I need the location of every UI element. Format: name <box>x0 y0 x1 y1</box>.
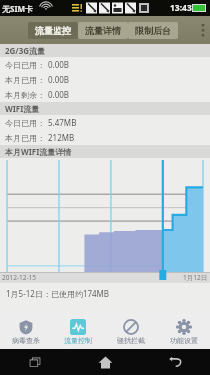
staticText: 功能设置 <box>170 336 198 345</box>
staticText: 流量监控 <box>35 25 71 36</box>
button[interactable]: Recent apps <box>0 349 70 375</box>
button[interactable]: 本月剩余： <box>0 87 210 102</box>
button[interactable]: 今日已用： <box>0 115 210 130</box>
button[interactable]: 流量详情 <box>78 22 128 39</box>
button[interactable]: 病毒查杀 <box>0 315 52 349</box>
staticText: 病毒查杀 <box>12 336 40 345</box>
staticText: 1月5-12日：已使用约174MB <box>6 288 110 299</box>
button[interactable]: 流量控制 <box>52 315 104 349</box>
staticText: 骚扰拦截 <box>117 336 145 345</box>
staticText: 今日已用： <box>5 118 45 128</box>
staticText: 本月已用： <box>5 133 45 143</box>
staticText: 13:43 <box>170 2 192 14</box>
staticText: 无SIM卡 <box>2 3 34 14</box>
staticText: 本月剩余： <box>5 90 45 100</box>
staticText: 本月已用： <box>5 75 45 85</box>
button[interactable]: 骚扰拦截 <box>104 315 157 349</box>
button[interactable]: 本月已用： <box>0 130 210 145</box>
staticText: 0.00B <box>48 59 70 70</box>
button[interactable]: Back <box>140 349 210 375</box>
button[interactable]: 本月已用： <box>0 72 210 87</box>
staticText: 2G/3G流量 <box>5 45 46 56</box>
staticText: 今日已用： <box>5 60 45 70</box>
staticText: 流量控制 <box>64 336 92 345</box>
staticText: 5.47MB <box>48 117 77 128</box>
staticText: 0.00B <box>48 74 70 85</box>
button[interactable]: 功能设置 <box>157 315 210 349</box>
button[interactable]: Home <box>70 349 140 375</box>
button[interactable]: 今日已用： <box>0 57 210 72</box>
button[interactable]: 限制后台 <box>128 22 178 39</box>
staticText: 2012-12-15 <box>2 273 36 282</box>
button[interactable]: More options <box>196 16 210 44</box>
staticText: 0.00B <box>48 89 70 100</box>
staticText: 本月WIFI流量详情 <box>5 146 72 157</box>
staticText: 流量详情 <box>85 25 121 36</box>
staticText: WIFI流量 <box>5 103 40 114</box>
staticText: 1月12日 <box>183 273 208 282</box>
staticText: 212MB <box>48 132 75 143</box>
staticText: 限制后台 <box>135 25 171 36</box>
button[interactable]: 流量监控 <box>28 22 78 39</box>
